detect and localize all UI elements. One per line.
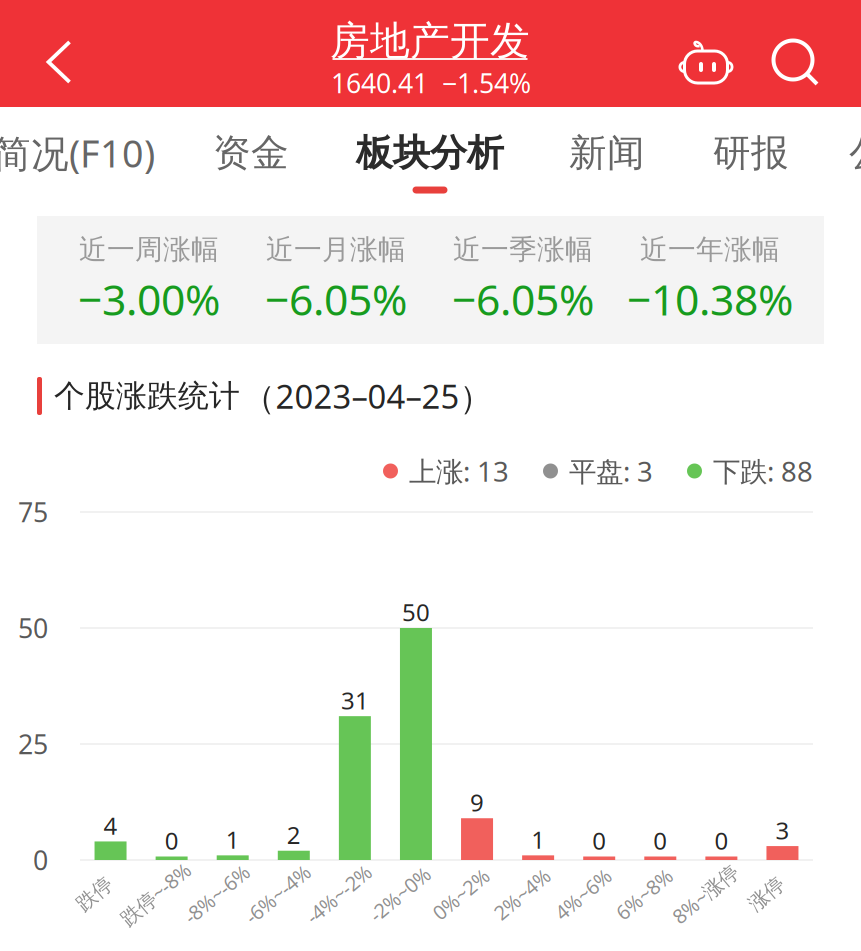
staticText: −10.38% [627,270,793,328]
staticText: 1640.41 −1.54% [331,65,531,101]
staticText: 50 [402,596,430,628]
button[interactable]: AI assistant [662,16,750,104]
staticText: 涨停 [746,881,786,907]
staticText: 9 [470,786,484,819]
staticText: 31 [341,684,369,716]
staticText: 0 [592,824,606,857]
staticText: 2 [287,818,301,851]
staticText: 简况(F10) [0,127,155,179]
button[interactable]: 资金 [191,107,311,209]
staticText: 跌停 [74,881,114,907]
staticText: 1 [226,823,240,856]
staticText: （2023–04–25） [242,374,492,418]
staticText: 资金 [213,129,289,177]
button[interactable]: Back [6,8,112,115]
staticText: 50 [18,610,48,646]
staticText: 25 [18,726,48,762]
staticText: 平盘: 3 [569,452,653,490]
staticText: 近一年涨幅 [640,232,780,267]
staticText: 3 [775,814,789,846]
staticText: 0 [33,842,48,878]
staticText: -2%~0% [363,880,436,908]
staticText: 房地产开发 [330,16,530,66]
staticText: 公 [849,129,861,177]
staticText: 近一月涨幅 [266,232,406,267]
staticText: 2%~4% [489,880,556,908]
staticText: 0 [165,824,179,857]
button[interactable]: Search [753,20,841,108]
staticText: 近一季涨幅 [453,232,593,267]
staticText: 研报 [713,129,789,177]
staticText: -6%~-4% [238,880,317,908]
staticText: −6.05% [452,270,594,328]
staticText: -4%~-2% [299,880,378,908]
staticText: 8%~涨停 [666,880,745,908]
staticText: 0 [653,824,667,857]
button[interactable]: 板块分析 [335,107,525,209]
staticText: 6%~8% [611,880,678,908]
staticText: 近一周涨幅 [79,232,219,267]
staticText: 1 [531,823,545,856]
staticText: 4 [103,809,117,842]
button[interactable]: 新闻 [547,107,667,209]
staticText: 75 [18,494,48,530]
button[interactable]: 公 [833,107,861,209]
staticText: 新闻 [569,129,645,177]
staticText: 下跌: 88 [713,452,813,490]
staticText: 跌停~-8% [113,880,198,908]
staticText: −3.00% [78,270,220,328]
staticText: −6.05% [265,270,407,328]
staticText: 个股涨跌统计 [54,377,240,415]
staticText: 0 [714,824,728,857]
staticText: 0%~2% [427,880,494,908]
staticText: 上涨: 13 [409,452,509,490]
button[interactable]: 研报 [691,107,811,209]
staticText: -8%~-6% [177,880,256,908]
button[interactable]: 简况(F10) [0,107,169,209]
staticText: 板块分析 [356,130,504,176]
staticText: 4%~6% [550,880,617,908]
